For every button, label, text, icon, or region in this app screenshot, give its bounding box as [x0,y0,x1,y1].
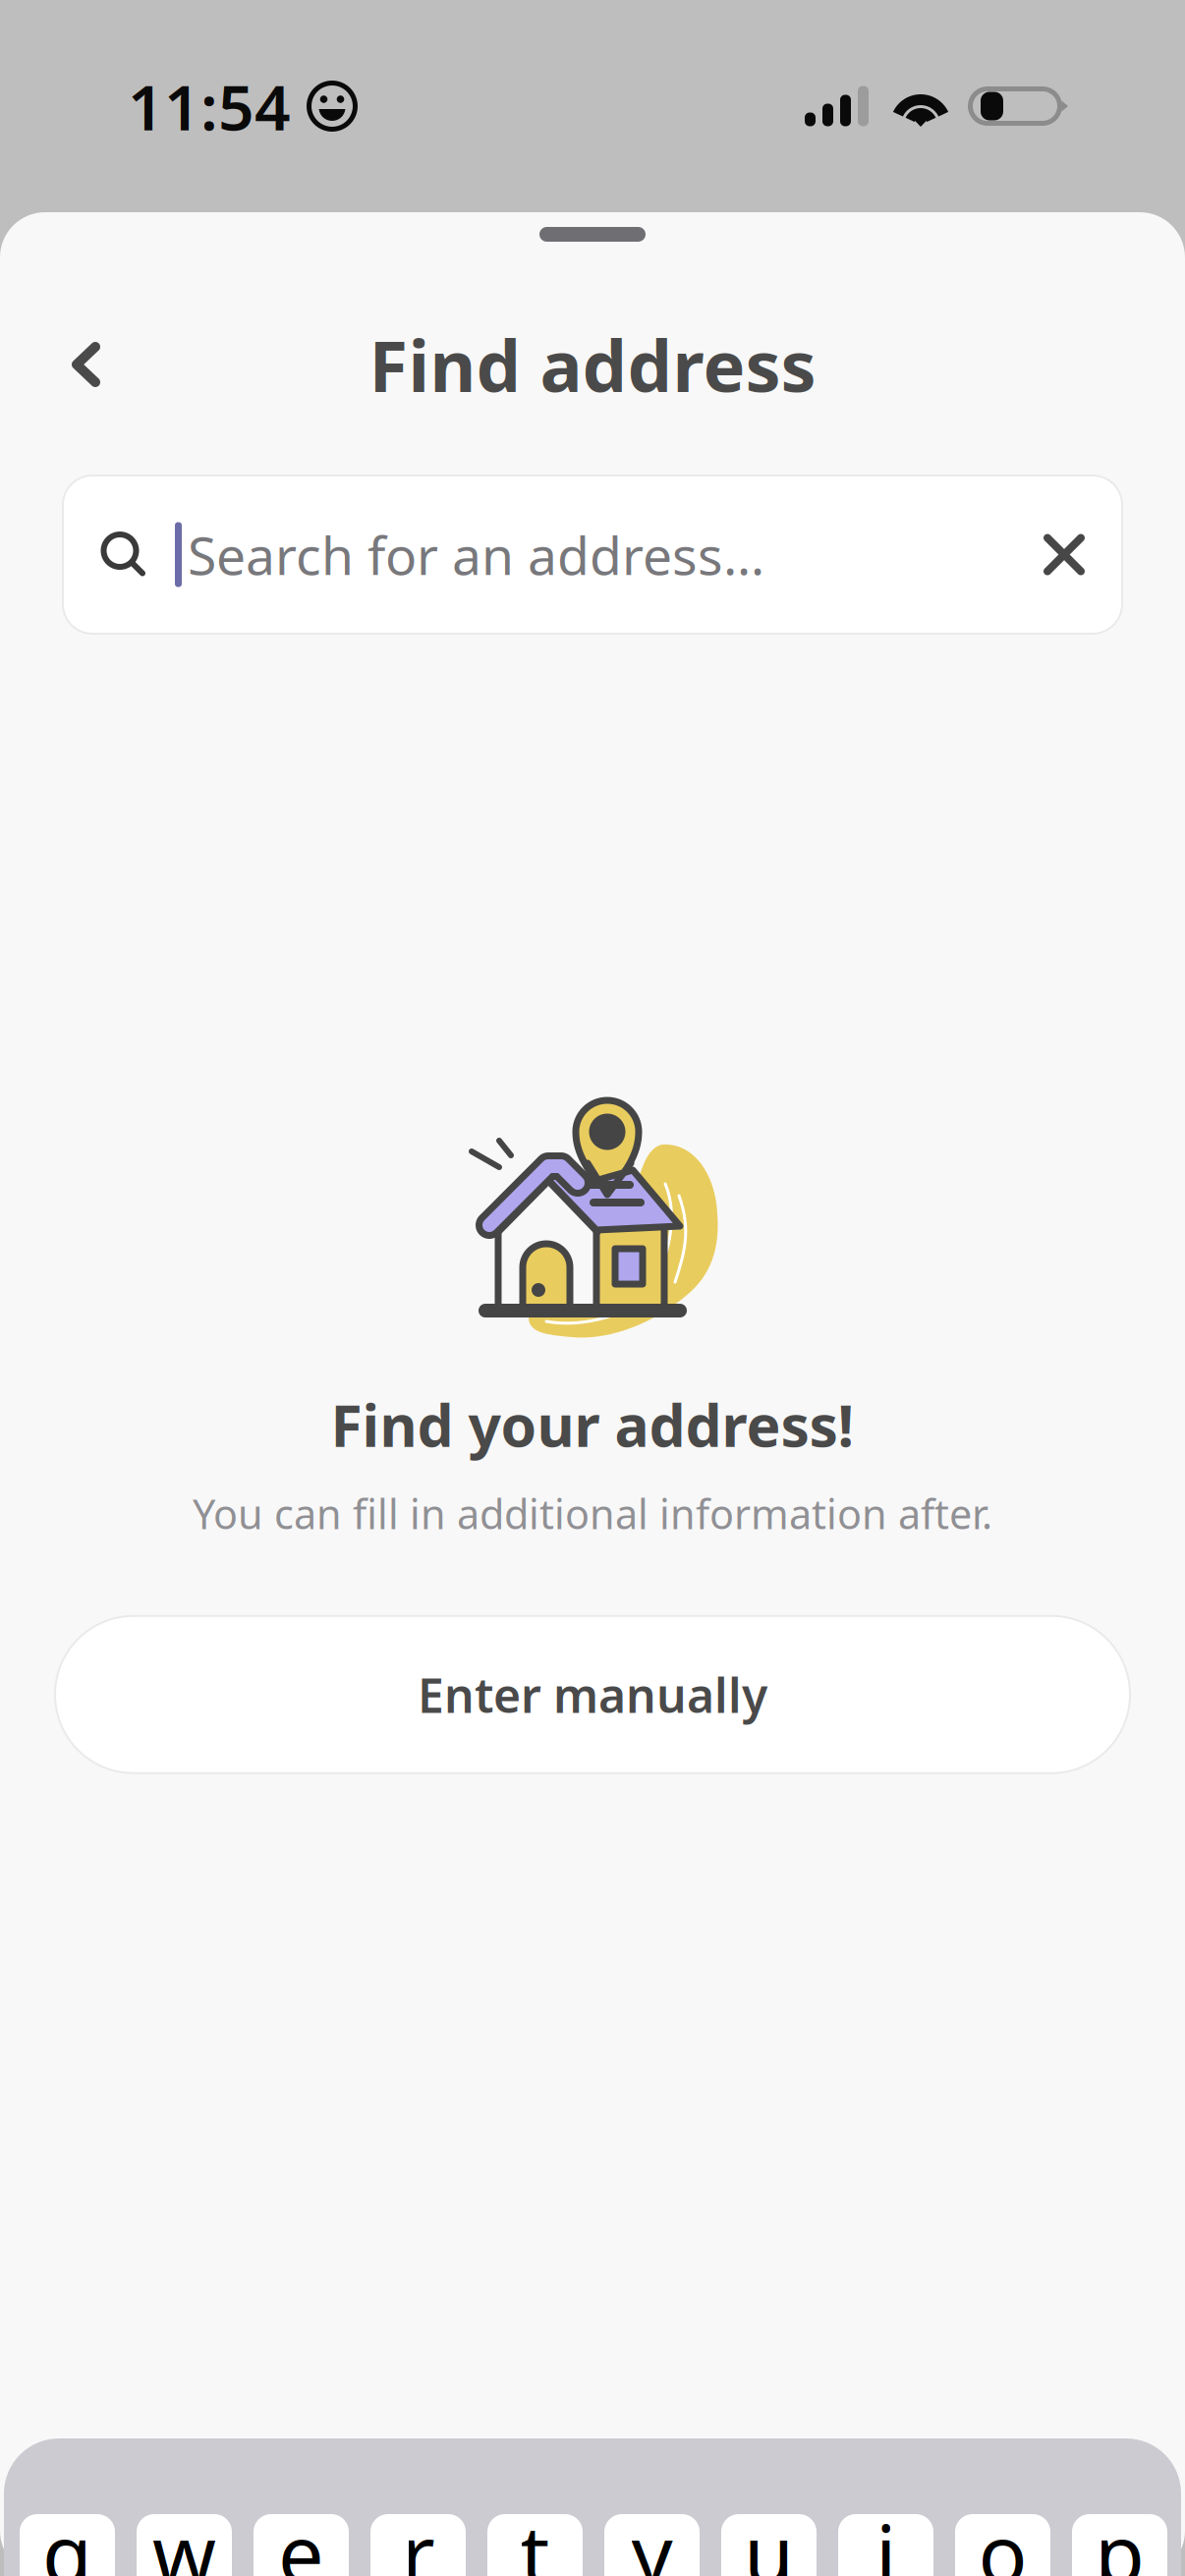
staticText: u [744,2498,794,2576]
staticText: w [152,2498,216,2576]
staticText: Enter manually [418,1663,767,1726]
button[interactable]: Enter manually [55,1616,1130,1773]
staticText: 11:54 [128,64,291,148]
staticText: i [875,2498,896,2576]
staticText: q [42,2498,92,2576]
button[interactable]: Back [0,308,140,420]
staticText: p [1095,2498,1145,2576]
staticText: Search for an address… [188,520,764,589]
staticText: t [520,2498,550,2576]
staticText: e [278,2498,324,2576]
staticText: Find address [369,318,816,411]
staticText: You can fill in additional information a… [193,1486,992,1540]
staticText: o [978,2498,1027,2576]
staticText: Find your address! [331,1386,854,1463]
staticText: r [401,2498,435,2576]
staticText: y [631,2498,673,2576]
button[interactable]: Clear search [1006,497,1122,613]
